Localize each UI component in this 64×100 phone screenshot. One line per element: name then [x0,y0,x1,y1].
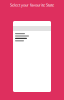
staticText: Select your favourite State [10,2,54,8]
